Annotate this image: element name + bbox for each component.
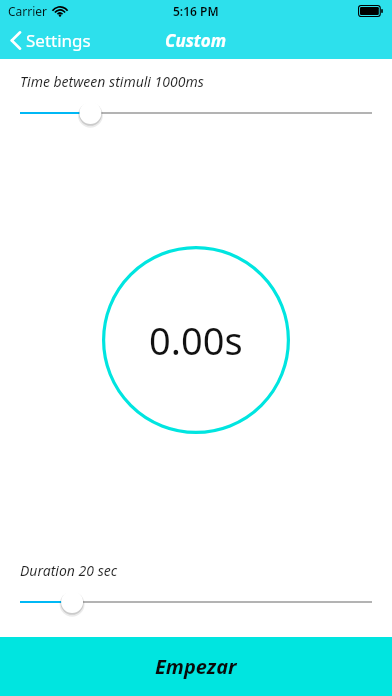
button[interactable]: Slider: [0, 100, 392, 126]
staticText: 0.00s: [149, 314, 243, 366]
staticText: Carrier: [8, 3, 48, 19]
staticText: Empezar: [155, 653, 237, 680]
button[interactable]: Slider: [0, 589, 392, 615]
staticText: Duration 20 sec: [20, 561, 118, 580]
button[interactable]: Empezar: [0, 637, 392, 696]
staticText: Time between stimuli 1000ms: [20, 72, 204, 91]
staticText: Custom: [165, 29, 227, 52]
button[interactable]: Back: [0, 25, 101, 56]
other: Back: [10, 31, 21, 50]
staticText: Settings: [26, 29, 91, 52]
staticText: 5:16 PM: [173, 3, 219, 19]
